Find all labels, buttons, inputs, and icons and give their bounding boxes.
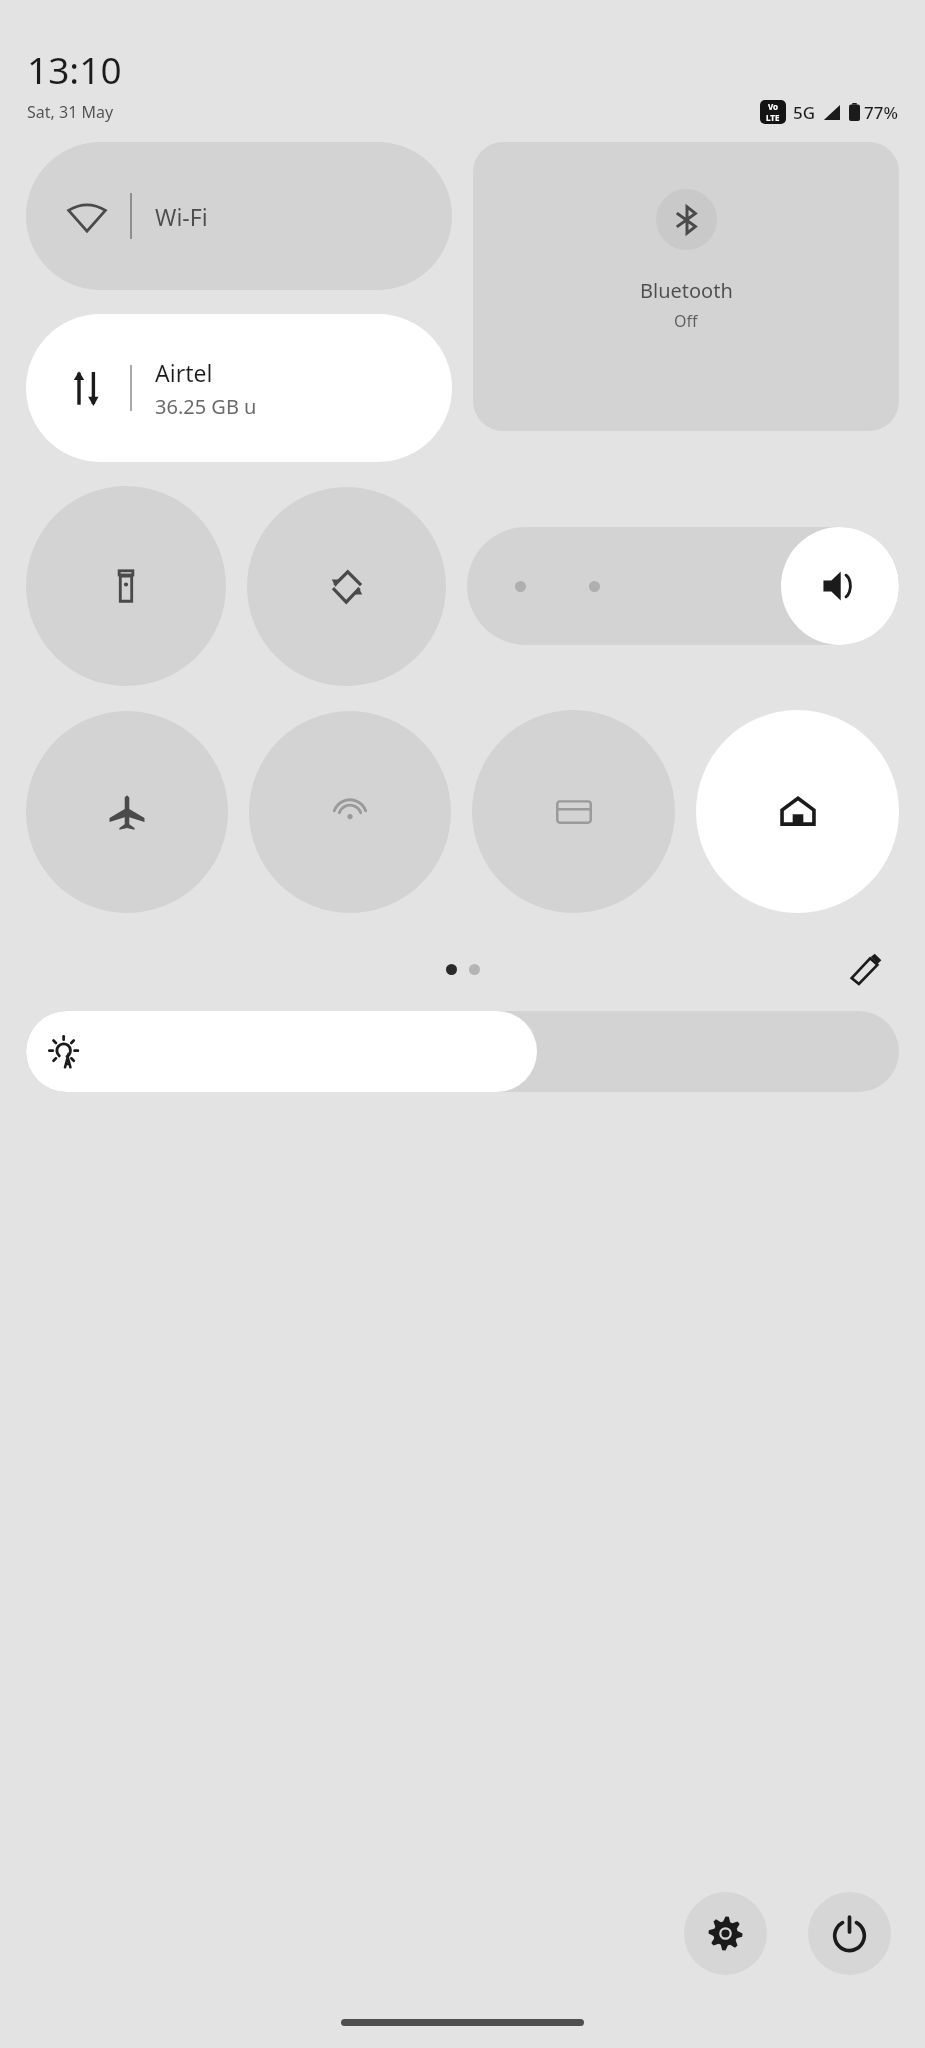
staticText: 36.25 GB u bbox=[155, 393, 257, 420]
button[interactable]: Settings bbox=[684, 1892, 767, 1975]
button[interactable]: Auto rotate bbox=[247, 487, 446, 686]
button[interactable]: Bluetooth bbox=[473, 142, 899, 431]
button[interactable]: Airplane mode bbox=[26, 711, 228, 913]
button[interactable]: Brightness bbox=[26, 1011, 899, 1092]
staticText: 77% bbox=[864, 101, 898, 124]
staticText: 13:10 bbox=[27, 44, 122, 94]
staticText: Off bbox=[674, 310, 698, 332]
staticText: 5G bbox=[793, 101, 816, 124]
button[interactable]: Flashlight bbox=[26, 486, 226, 686]
button[interactable]: Hotspot bbox=[249, 711, 451, 913]
staticText: Vo bbox=[768, 101, 779, 112]
button[interactable]: Wallet bbox=[472, 710, 675, 913]
button[interactable]: Wi-Fi bbox=[26, 142, 452, 290]
staticText: Sat, 31 May bbox=[27, 101, 114, 123]
button[interactable]: Power bbox=[808, 1892, 891, 1975]
button[interactable]: Edit tiles bbox=[841, 945, 889, 993]
button[interactable]: Sound bbox=[467, 527, 899, 645]
staticText: Wi-Fi bbox=[155, 201, 208, 232]
staticText: Airtel bbox=[155, 357, 213, 388]
staticText: LTE bbox=[766, 112, 780, 123]
button[interactable]: Home bbox=[696, 710, 899, 913]
button[interactable]: Airtel bbox=[26, 314, 452, 462]
staticText: Bluetooth bbox=[640, 277, 733, 304]
